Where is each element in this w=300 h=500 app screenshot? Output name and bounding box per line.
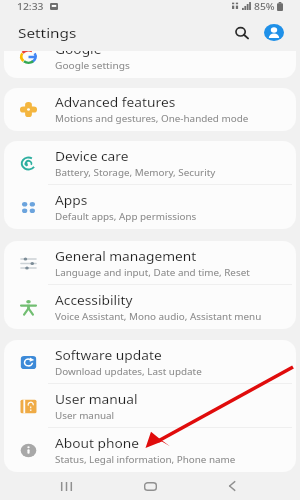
staticText: User manual: [55, 391, 137, 408]
staticText: 12:33: [17, 0, 45, 12]
button[interactable]: Software update: [4, 340, 296, 384]
staticText: Language and input, Date and time, Reset: [55, 266, 250, 279]
button[interactable]: Google: [4, 51, 296, 70]
staticText: Google settings: [55, 59, 131, 72]
button[interactable]: Device care: [4, 141, 296, 185]
staticText: Motions and gestures, One-handed mode: [55, 112, 249, 125]
staticText: Status, Legal information, Phone name: [55, 453, 236, 466]
button[interactable]: Home: [130, 472, 170, 500]
staticText: Default apps, App permissions: [55, 210, 197, 223]
button[interactable]: Account: [261, 20, 286, 45]
staticText: Battery, Storage, Memory, Security: [55, 166, 216, 179]
staticText: Google: [55, 51, 102, 58]
button[interactable]: Accessibility: [4, 285, 296, 329]
button[interactable]: Search: [229, 20, 254, 45]
staticText: Voice Assistant, Mono audio, Assistant m…: [55, 310, 262, 323]
staticText: Device care: [55, 148, 129, 165]
staticText: Download updates, Last update: [55, 365, 202, 378]
button[interactable]: About phone: [4, 428, 296, 472]
staticText: General management: [55, 248, 197, 265]
button[interactable]: User manual: [4, 384, 296, 428]
staticText: 85%: [254, 0, 275, 12]
staticText: Settings: [18, 24, 77, 42]
staticText: About phone: [55, 435, 140, 452]
staticText: Accessibility: [55, 292, 133, 309]
staticText: Advanced features: [55, 94, 176, 111]
button[interactable]: Back: [212, 472, 252, 500]
button[interactable]: Advanced features: [4, 88, 296, 131]
staticText: Software update: [55, 347, 162, 364]
button[interactable]: Recent apps: [46, 472, 86, 500]
button[interactable]: Apps: [4, 185, 296, 229]
staticText: User manual: [55, 409, 115, 422]
staticText: Apps: [55, 192, 88, 209]
button[interactable]: General management: [4, 241, 296, 285]
